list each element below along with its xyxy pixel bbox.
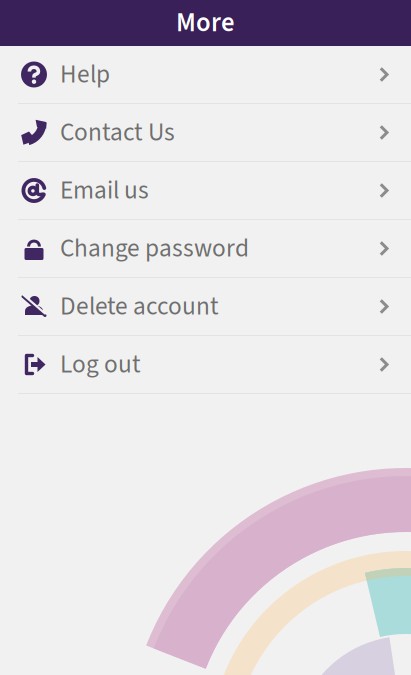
staticText: Change password <box>60 230 249 267</box>
staticText: Contact Us <box>60 114 175 151</box>
button[interactable]: Contact Us <box>0 104 411 162</box>
button[interactable]: Log out <box>0 336 411 394</box>
staticText: Delete account <box>60 288 219 325</box>
button[interactable]: Help <box>0 46 411 104</box>
button[interactable]: Change password <box>0 220 411 278</box>
staticText: More <box>176 4 235 42</box>
staticText: Help <box>60 56 110 93</box>
button[interactable]: Email us <box>0 162 411 220</box>
staticText: Email us <box>60 172 149 209</box>
button[interactable]: Delete account <box>0 278 411 336</box>
staticText: Log out <box>60 346 141 383</box>
